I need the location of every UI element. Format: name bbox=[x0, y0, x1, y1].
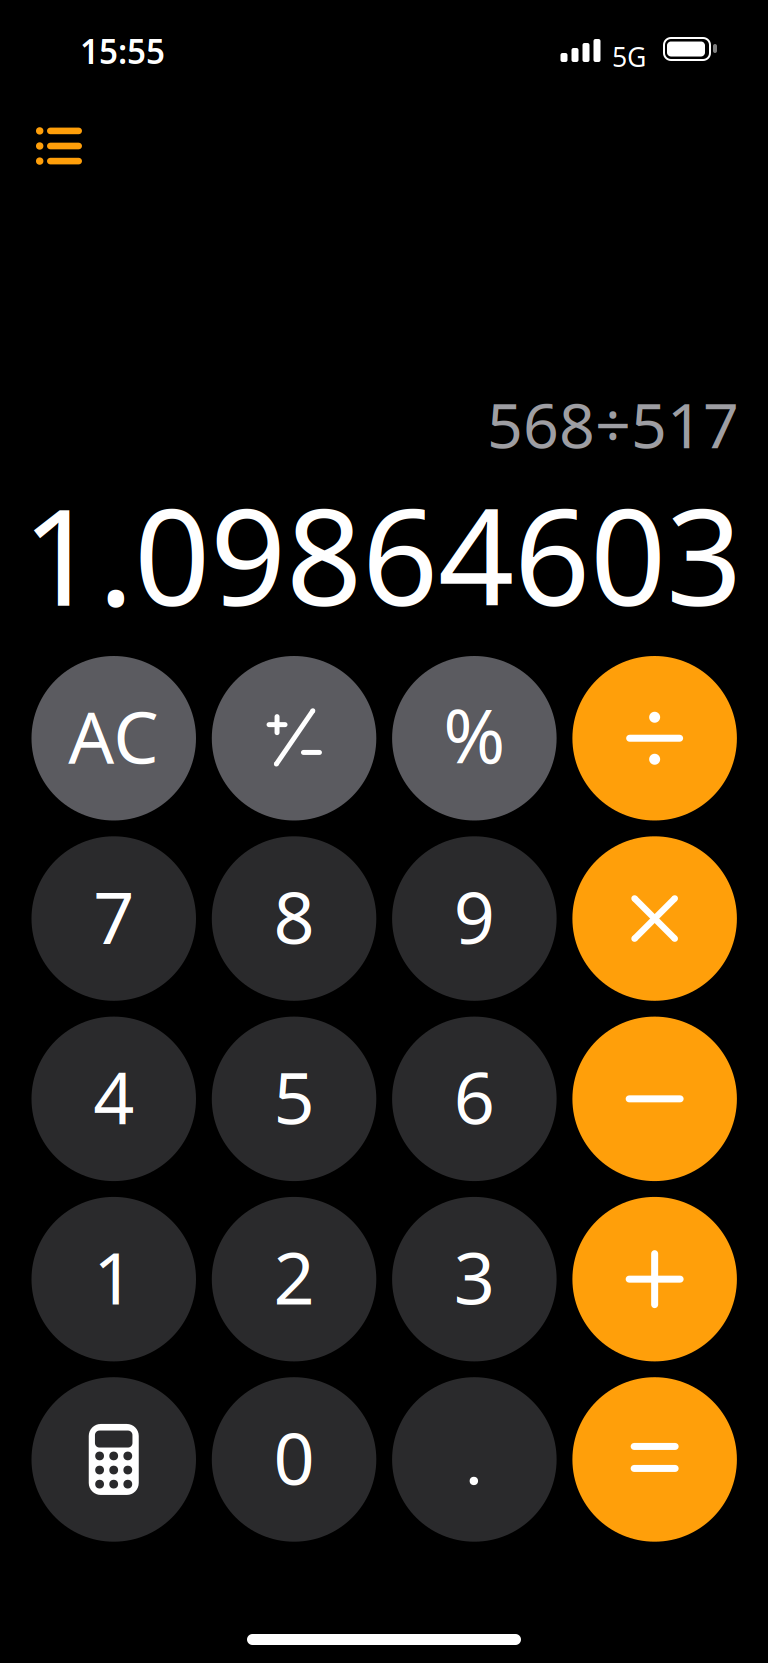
staticText: 5G bbox=[612, 39, 646, 74]
button[interactable]: Divide bbox=[572, 656, 737, 820]
staticText: % bbox=[443, 685, 505, 784]
button[interactable]: Add bbox=[572, 1197, 737, 1361]
staticText: 2 bbox=[274, 1229, 315, 1324]
button[interactable]: 7 bbox=[31, 836, 196, 1001]
button[interactable]: 6 bbox=[392, 1017, 557, 1181]
button[interactable]: 8 bbox=[212, 836, 376, 1001]
button[interactable]: 3 bbox=[392, 1197, 557, 1361]
button[interactable]: 9 bbox=[392, 836, 557, 1001]
staticText: 1 bbox=[93, 1229, 134, 1324]
staticText: 5 bbox=[274, 1048, 315, 1144]
staticText: 4 bbox=[93, 1048, 134, 1144]
button[interactable]: Multiply bbox=[572, 836, 737, 1001]
staticText: 7 bbox=[93, 868, 134, 964]
button[interactable]: Subtract bbox=[572, 1017, 737, 1181]
button[interactable]: Percent bbox=[392, 656, 557, 820]
staticText: 3 bbox=[454, 1229, 495, 1324]
button[interactable]: Calculator bbox=[31, 1377, 196, 1542]
staticText: 0 bbox=[274, 1409, 315, 1505]
button[interactable]: Plus minus bbox=[212, 656, 376, 820]
staticText: 8 bbox=[274, 868, 315, 964]
button[interactable]: Equals bbox=[572, 1377, 737, 1542]
staticText: AC bbox=[68, 688, 159, 783]
button[interactable]: 1 bbox=[31, 1197, 196, 1361]
button[interactable]: Decimal point bbox=[392, 1377, 557, 1542]
staticText: 15:55 bbox=[80, 29, 165, 73]
staticText: 568÷517 bbox=[487, 382, 739, 466]
staticText: 9 bbox=[454, 868, 495, 964]
button[interactable]: 2 bbox=[212, 1197, 376, 1361]
staticText: 1.09864603 bbox=[22, 465, 742, 643]
button[interactable]: 4 bbox=[31, 1017, 196, 1181]
staticText: 6 bbox=[454, 1048, 495, 1144]
button[interactable]: 5 bbox=[212, 1017, 376, 1181]
button[interactable]: History bbox=[19, 113, 99, 179]
button[interactable]: 0 bbox=[212, 1377, 376, 1542]
button[interactable]: All clear bbox=[31, 656, 196, 820]
